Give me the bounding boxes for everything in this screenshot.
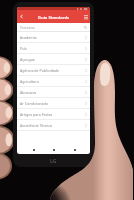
button[interactable]: More options [81,10,90,23]
button[interactable]: Abrasivos [17,87,90,97]
staticText: Agência de Publicidade [20,68,60,73]
button[interactable]: Terceiros [17,23,90,31]
staticText: Assistência Técnica [20,123,52,128]
button[interactable]: Agricultura [17,76,90,86]
button[interactable]: Recents [70,145,79,154]
staticText: Artigos para Festas [20,112,53,117]
button[interactable]: Pub [17,43,90,53]
button[interactable]: Assistência Técnica [17,120,90,130]
staticText: Açougue [20,57,35,62]
staticText: Guia Standards [26,14,81,20]
staticText: Academia [20,35,37,40]
button[interactable]: Ar Condicionado [17,98,90,108]
button[interactable]: Back [29,145,38,154]
button[interactable]: Navigate up [17,10,26,23]
staticText: Ar Condicionado [20,101,48,106]
button[interactable]: Açougue [17,54,90,64]
staticText: LG [50,157,57,164]
button[interactable]: Academia [17,32,90,42]
staticText: Agricultura [20,79,39,84]
other: Search [84,26,87,29]
staticText: Pub [20,46,27,51]
button[interactable]: Home [49,145,58,154]
staticText: Terceiros [20,25,35,30]
button[interactable]: Agência de Publicidade [17,65,90,75]
staticText: Abrasivos [20,90,37,95]
button[interactable]: Artigos para Festas [17,109,90,119]
